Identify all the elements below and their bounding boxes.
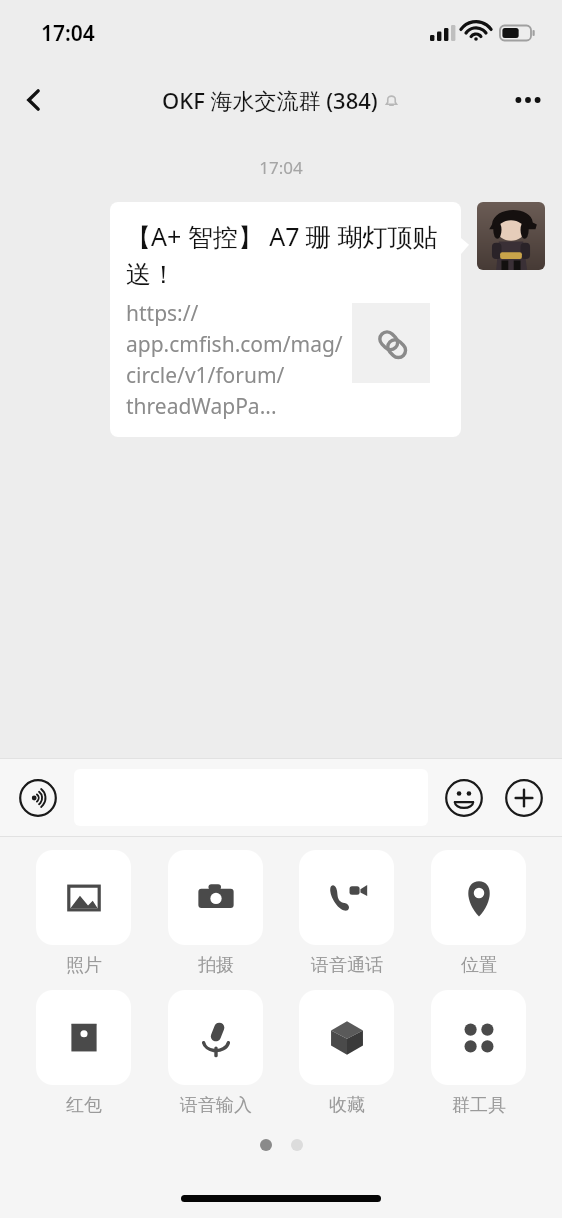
button[interactable]: 位置	[431, 850, 526, 977]
button[interactable]: 【A+ 智控】 A7 珊 瑚灯顶贴送！	[110, 202, 461, 437]
button[interactable]: 语音输入	[168, 990, 263, 1117]
staticText: 语音输入	[180, 1094, 252, 1117]
button[interactable]: Back	[10, 76, 58, 124]
staticText: https://app.cmfish.com/mag/circle/v1/for…	[126, 299, 346, 420]
staticText: OKF 海水交流群 (384)	[162, 85, 378, 115]
staticText: 语音通话	[311, 954, 383, 977]
staticText: 位置	[461, 954, 497, 977]
button[interactable]: 群工具	[431, 990, 526, 1117]
staticText: 17:04	[0, 156, 562, 179]
button[interactable]: 拍摄	[168, 850, 263, 977]
button[interactable]: Voice input	[17, 777, 59, 819]
button[interactable]: Emoji	[443, 777, 485, 819]
button[interactable]: 收藏	[299, 990, 394, 1117]
button[interactable]: 红包	[36, 990, 131, 1117]
staticText: 拍摄	[198, 954, 234, 977]
staticText: 红包	[66, 1094, 102, 1117]
staticText: 群工具	[452, 1094, 506, 1117]
button[interactable]: Avatar	[477, 202, 545, 270]
button[interactable]: More options	[504, 76, 552, 124]
staticText: 17:04	[41, 19, 95, 48]
staticText: 【A+ 智控】 A7 珊 瑚灯顶贴送！	[126, 219, 447, 290]
button[interactable]: 照片	[36, 850, 131, 977]
button[interactable]: More	[503, 777, 545, 819]
staticText: 收藏	[329, 1094, 365, 1117]
button[interactable]: 语音通话	[299, 850, 394, 977]
staticText: 照片	[66, 954, 102, 977]
